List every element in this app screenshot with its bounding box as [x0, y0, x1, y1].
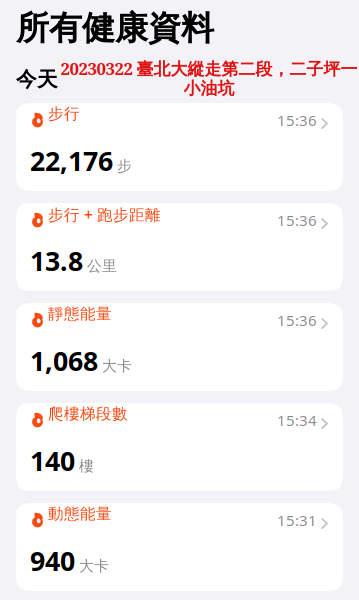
button[interactable]: 靜態能量	[16, 303, 343, 391]
staticText: 靜態能量	[48, 304, 112, 323]
staticText: 公里	[87, 257, 117, 275]
button[interactable]: 步行	[16, 103, 343, 191]
staticText: 15:36	[277, 210, 317, 230]
staticText: 所有健康資料	[16, 7, 214, 49]
staticText: 動態能量	[48, 504, 112, 523]
button[interactable]: 爬樓梯段數	[16, 403, 343, 491]
staticText: 940	[30, 542, 75, 579]
staticText: 15:36	[277, 110, 317, 130]
staticText: 22,176	[30, 142, 113, 179]
staticText: 大卡	[102, 357, 132, 375]
staticText: 13.8	[30, 242, 83, 279]
staticText: 步	[117, 157, 132, 175]
staticText: 大卡	[79, 557, 109, 575]
staticText: 15:34	[277, 410, 317, 430]
staticText: 步行	[48, 104, 80, 123]
staticText: 今天	[16, 66, 58, 92]
button[interactable]: 動態能量	[16, 503, 343, 591]
staticText: 140	[30, 442, 75, 479]
staticText: 小油坑	[183, 78, 234, 99]
staticText: 樓	[79, 457, 94, 475]
staticText: 20230322 臺北大縱走第二段，二子坪一	[60, 57, 357, 80]
staticText: 15:36	[277, 310, 317, 330]
staticText: 步行 + 跑步距離	[48, 204, 161, 225]
staticText: 15:31	[277, 510, 317, 530]
staticText: 爬樓梯段數	[48, 404, 128, 423]
button[interactable]: 步行 + 跑步距離	[16, 203, 343, 291]
staticText: 1,068	[30, 342, 98, 379]
